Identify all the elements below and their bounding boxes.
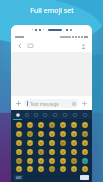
staticText: Full emoji set (30, 6, 74, 16)
button[interactable]: Text message (24, 99, 79, 108)
button[interactable]: Emoji 19 (58, 138, 67, 147)
button[interactable]: Emoji 12 (58, 129, 67, 138)
button[interactable]: Emoji category 3 (31, 110, 40, 119)
button[interactable]: Backspace (80, 175, 89, 180)
button[interactable]: Emoji 31 (36, 156, 45, 165)
button[interactable]: Emoji 15 (14, 138, 23, 147)
button[interactable]: Emoji 40 (58, 165, 67, 173)
button[interactable]: Emoji 4 (47, 120, 56, 129)
staticText: Text message (30, 101, 59, 107)
button[interactable]: Emoji 24 (36, 147, 45, 156)
button[interactable]: Send (80, 99, 89, 108)
button[interactable]: Emoji 39 (47, 165, 56, 173)
button[interactable]: Emoji 42 (80, 165, 89, 173)
button[interactable]: Emoji 1 (14, 120, 23, 129)
button[interactable]: Emoji 8 (14, 129, 23, 138)
button[interactable]: Emoji 35 (80, 156, 89, 165)
button[interactable]: Emoji 3 (36, 120, 45, 129)
button[interactable]: Emoji 38 (36, 165, 45, 173)
button[interactable]: Emoji 11 (47, 129, 56, 138)
button[interactable]: Emoji 21 (80, 138, 89, 147)
button[interactable]: Emoji category 1 (13, 110, 22, 119)
button[interactable]: Back (16, 42, 24, 50)
button[interactable]: Add attachment (14, 99, 23, 108)
button[interactable]: Emoji category 5 (50, 110, 60, 119)
button[interactable]: Emoji 36 (14, 165, 23, 173)
button[interactable]: Emoji category 4 (40, 110, 50, 119)
button[interactable]: Emoji category 7 (70, 110, 80, 119)
button[interactable]: Emoji 32 (47, 156, 56, 165)
button[interactable]: Emoji 18 (47, 138, 56, 147)
button[interactable]: Emoji 16 (25, 138, 34, 147)
button[interactable]: Emoji 7 (80, 120, 89, 129)
button[interactable]: Emoji 6 (69, 120, 78, 129)
button[interactable]: Emoji 30 (25, 156, 34, 165)
button[interactable]: Emoji 2 (25, 120, 34, 129)
button[interactable]: Emoji 29 (14, 156, 23, 165)
button[interactable]: Emoji 26 (58, 147, 67, 156)
button[interactable]: Emoji 28 (80, 147, 89, 156)
button[interactable]: Emoji 17 (36, 138, 45, 147)
button[interactable]: Emoji 23 (25, 147, 34, 156)
button[interactable]: Emoji 13 (69, 129, 78, 138)
button[interactable]: Emoji 14 (80, 129, 89, 138)
button[interactable]: Emoji category 8 (80, 110, 90, 119)
button[interactable]: Emoji category 2 (22, 110, 31, 119)
staticText: ABC (16, 176, 22, 180)
button[interactable]: Emoji 41 (69, 165, 78, 173)
button[interactable]: Emoji 25 (47, 147, 56, 156)
button[interactable]: Emoji 9 (25, 129, 34, 138)
button[interactable]: Emoji 5 (58, 120, 67, 129)
button[interactable]: Emoji 10 (36, 129, 45, 138)
button[interactable]: Emoji 34 (69, 156, 78, 165)
button[interactable]: Emoji 22 (14, 147, 23, 156)
button[interactable]: Conversation (26, 42, 34, 50)
button[interactable]: Emoji 27 (69, 147, 78, 156)
button[interactable]: Contact (79, 42, 87, 50)
button[interactable]: Emoji 37 (25, 165, 34, 173)
button[interactable]: ABC (14, 175, 23, 180)
button[interactable]: Emoji 20 (69, 138, 78, 147)
button[interactable]: Emoji 33 (58, 156, 67, 165)
button[interactable]: Emoji category 6 (60, 110, 70, 119)
